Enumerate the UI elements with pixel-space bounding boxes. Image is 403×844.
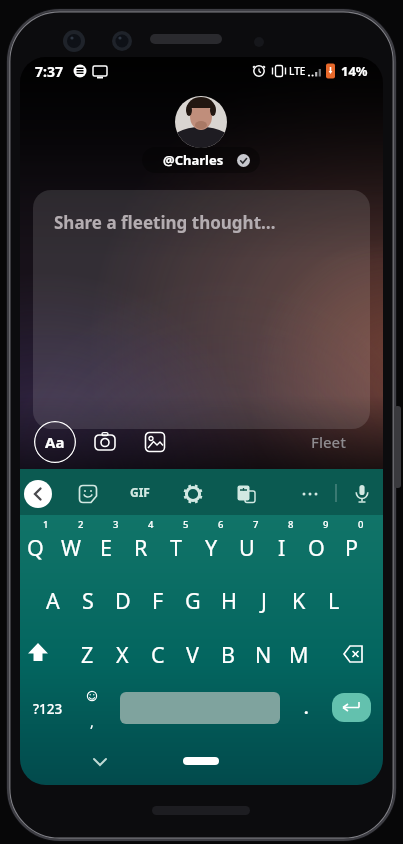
button[interactable]: M [281,628,316,680]
button[interactable]: A [35,574,70,626]
staticText: 8 [288,518,294,531]
staticText: D [115,586,131,615]
staticText: , [90,712,94,731]
staticText: L [328,586,340,615]
button[interactable] [183,757,219,765]
button[interactable]: O [299,525,334,569]
button[interactable] [179,480,207,508]
button[interactable]: , [72,684,112,734]
button[interactable]: ?123 [23,684,73,734]
button[interactable]: Z [70,628,105,680]
staticText: 7 [253,518,259,531]
staticText: T [170,533,182,562]
button[interactable] [120,692,280,724]
staticText: C [151,640,165,669]
staticText: I [278,533,286,562]
staticText: V [186,640,199,669]
staticText: Z [81,640,94,669]
staticText: 1 [43,518,49,531]
button[interactable]: R [123,525,158,569]
staticText: 4 [148,518,154,531]
button[interactable]: G [175,574,210,626]
staticText: Q [27,533,44,562]
button[interactable]: H [211,574,246,626]
button[interactable]: W [53,525,88,569]
staticText: 5 [183,518,189,531]
button[interactable]: I [264,525,299,569]
button[interactable]: K [281,574,316,626]
button[interactable]: V [175,628,210,680]
staticText: E [100,533,112,562]
staticText: W [61,533,81,562]
staticText: . [304,697,309,719]
staticText: B [221,640,235,669]
button[interactable]: GIF [120,478,160,506]
staticText: X [116,640,129,669]
staticText: Y [205,533,218,562]
button[interactable]: L [316,574,351,626]
button[interactable]: Aa [34,421,76,463]
staticText: N [255,640,272,669]
button[interactable]: F [140,574,175,626]
button[interactable]: D [105,574,140,626]
staticText: A [46,586,60,615]
button[interactable]: E [88,525,123,569]
staticText: ?123 [33,700,63,718]
button[interactable]: J [246,574,281,626]
button[interactable]: Share a fleeting thought… [33,190,370,429]
staticText: R [134,533,148,562]
staticText: LTE [289,64,306,78]
button[interactable] [80,747,120,777]
button[interactable]: P [334,525,369,569]
staticText: GIF [130,484,150,500]
staticText: M [289,640,309,669]
button[interactable]: S [70,574,105,626]
staticText: S [82,586,94,615]
staticText: @Charles [163,151,224,169]
button[interactable]: Fleet [300,426,356,458]
staticText: Share a fleeting thought… [54,211,276,234]
button[interactable] [232,480,260,508]
button[interactable] [24,480,52,508]
staticText: 2 [78,518,84,531]
staticText: F [152,586,164,615]
button[interactable]: X [105,628,140,680]
staticText: 0 [358,518,364,531]
button[interactable] [143,430,167,454]
staticText: U [239,533,255,562]
staticText: G [185,586,201,615]
staticText: J [261,586,267,615]
staticText: Fleet [311,432,346,452]
staticText: 14% [341,62,368,80]
staticText: Aa [45,432,65,452]
button[interactable] [330,629,372,679]
button[interactable]: U [229,525,264,569]
staticText: P [345,533,359,562]
staticText: K [292,586,306,615]
button[interactable] [296,480,324,508]
button[interactable]: @Charles [142,147,260,173]
button[interactable]: Y [194,525,229,569]
staticText: O [308,533,325,562]
staticText: 6 [218,518,224,531]
staticText: 9 [323,518,329,531]
button[interactable] [93,430,117,454]
button[interactable] [74,480,102,508]
staticText: 7:37 [35,62,63,81]
button[interactable]: T [158,525,193,569]
button[interactable] [20,629,56,679]
staticText: 3 [113,518,119,531]
button[interactable] [348,480,376,508]
button[interactable]: N [246,628,281,680]
button[interactable] [332,693,371,722]
button[interactable]: B [210,628,245,680]
button[interactable]: Q [20,525,53,569]
button[interactable]: C [140,628,175,680]
staticText: H [221,586,237,615]
